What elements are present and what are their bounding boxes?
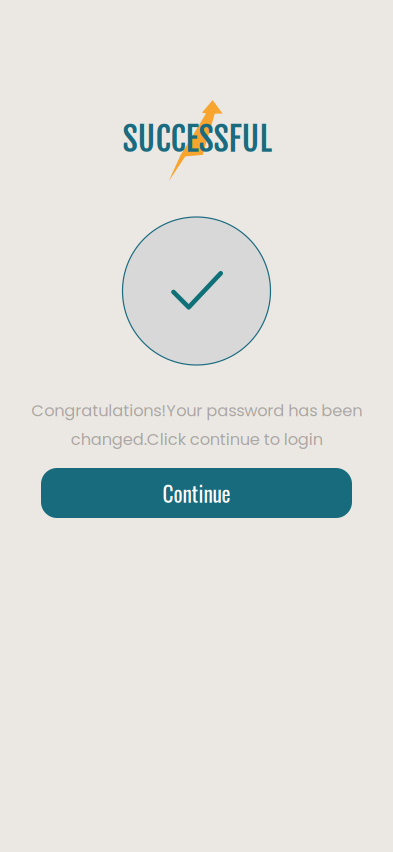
staticText: Continue bbox=[162, 477, 230, 509]
staticText: SUCCESSFUL bbox=[122, 118, 271, 160]
button[interactable]: Continue bbox=[41, 468, 352, 518]
staticText: Congratulations!Your password has been c… bbox=[31, 399, 362, 451]
